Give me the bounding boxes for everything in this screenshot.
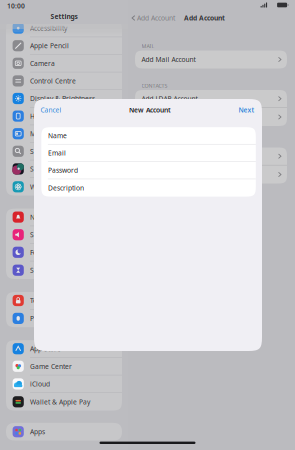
staticText: Display & Brightness [30, 94, 95, 103]
button[interactable]: Privacy & Security [6, 310, 122, 327]
staticText: Focus [30, 248, 47, 257]
staticText: Apps [30, 427, 45, 436]
staticText: Notifications [30, 213, 69, 222]
button[interactable]: Cancel [40, 106, 61, 114]
staticText: Settings [50, 12, 77, 21]
button[interactable]: Multitasking & Gestures [6, 125, 122, 143]
staticText: Add Mail Account [142, 55, 196, 64]
staticText: Accessibility [30, 24, 67, 33]
staticText: Multitasking & Gestures [30, 129, 106, 138]
staticText: 10:00 [7, 2, 25, 10]
staticText: Add LDAP Account [142, 94, 198, 103]
staticText: Add CalDAV Account [142, 170, 205, 179]
button[interactable]: Add CalDAV Account [135, 165, 287, 183]
button[interactable]: Next [238, 106, 254, 114]
button[interactable]: Add Mail Account [135, 50, 287, 68]
button[interactable]: Accessibility [6, 20, 122, 37]
button[interactable]: iCloud [6, 375, 122, 393]
staticText: Description [48, 183, 84, 192]
button[interactable]: Screen Time [6, 261, 122, 279]
button[interactable]: Control Centre [6, 72, 122, 90]
staticText: Add Account [137, 14, 175, 22]
staticText: App Store [30, 344, 61, 353]
button[interactable]: Apps [6, 423, 122, 440]
staticText: Add Account [184, 14, 225, 22]
staticText: Search [30, 147, 52, 156]
staticText: CALENDARS [141, 140, 170, 147]
staticText: Touch ID & Passcode [30, 296, 95, 305]
staticText: Game Center [30, 362, 72, 371]
staticText: Sounds [30, 230, 53, 239]
button[interactable]: Apple Pencil [6, 37, 122, 55]
button[interactable]: Home Screen & App Library [6, 108, 122, 125]
staticText: CONTACTS [141, 82, 167, 89]
button[interactable]: App Store [6, 340, 122, 358]
staticText: Name [48, 131, 67, 140]
button[interactable]: Wallpaper [6, 178, 122, 196]
staticText: Next [238, 106, 254, 114]
staticText: Privacy & Security [30, 314, 86, 323]
button[interactable]: Sounds [6, 226, 122, 244]
staticText: MAIL [141, 43, 154, 50]
button[interactable]: Siri [6, 160, 122, 178]
staticText: Siri [30, 164, 41, 173]
staticText: Wallpaper [30, 182, 63, 191]
button[interactable]: Game Center [6, 358, 122, 375]
button[interactable]: Camera [6, 55, 122, 72]
staticText: Screen Time [30, 266, 70, 275]
button[interactable]: Focus [6, 244, 122, 261]
staticText: New Account [129, 106, 171, 114]
staticText: Cancel [40, 106, 61, 114]
staticText: iCloud [30, 379, 50, 388]
button[interactable]: Add Account [131, 14, 175, 22]
staticText: Camera [30, 59, 55, 68]
button[interactable]: Display & Brightness [6, 90, 122, 108]
staticText: Home Screen & App Library [30, 112, 118, 121]
button[interactable]: Notifications [6, 209, 122, 226]
button[interactable]: Add Subscribed Calendar [135, 147, 287, 165]
staticText: Password [48, 166, 78, 175]
button[interactable]: Wallet & Apple Pay [6, 393, 122, 411]
staticText: Wallet & Apple Pay [30, 397, 90, 406]
button[interactable]: Search [6, 143, 122, 160]
button[interactable]: Touch ID & Passcode [6, 292, 122, 310]
staticText: Apple Pencil [30, 41, 69, 50]
staticText: Email [48, 148, 66, 157]
button[interactable]: Add CardDAV Account [135, 108, 287, 126]
button[interactable]: Add LDAP Account [135, 90, 287, 108]
staticText: Control Centre [30, 76, 76, 85]
